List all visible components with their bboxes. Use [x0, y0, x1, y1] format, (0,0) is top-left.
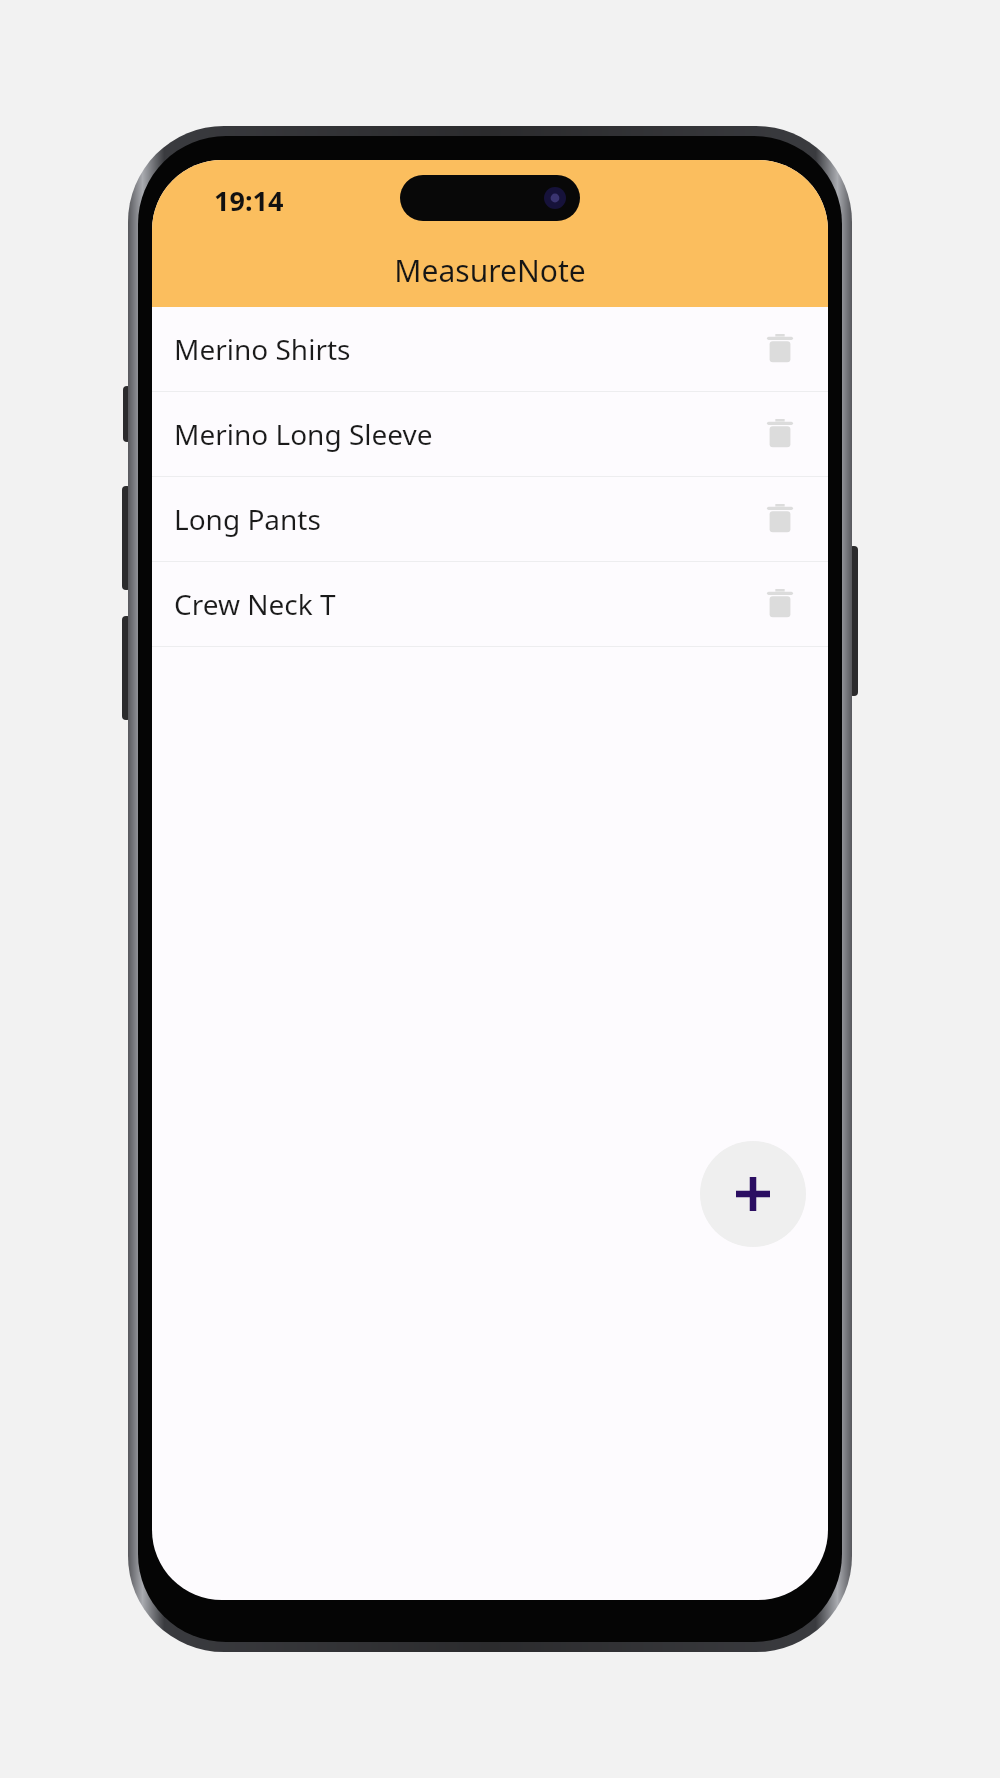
staticText: 19:14	[214, 182, 284, 219]
button[interactable]: Delete Merino Shirts	[752, 321, 808, 377]
button[interactable]: Delete Merino Long Sleeve	[752, 406, 808, 462]
button[interactable]: Add measurement	[700, 1141, 806, 1247]
staticText: MeasureNote	[394, 250, 586, 291]
staticText: Crew Neck T	[174, 585, 752, 623]
button[interactable]: Crew Neck T	[152, 562, 828, 646]
button[interactable]: Delete Long Pants	[752, 491, 808, 547]
button[interactable]: Merino Long Sleeve	[152, 392, 828, 476]
button[interactable]: Merino Shirts	[152, 307, 828, 391]
button[interactable]: Delete Crew Neck T	[752, 576, 808, 632]
staticText: Merino Shirts	[174, 330, 752, 368]
button[interactable]: Long Pants	[152, 477, 828, 561]
staticText: Long Pants	[174, 500, 752, 538]
staticText: Merino Long Sleeve	[174, 415, 752, 453]
